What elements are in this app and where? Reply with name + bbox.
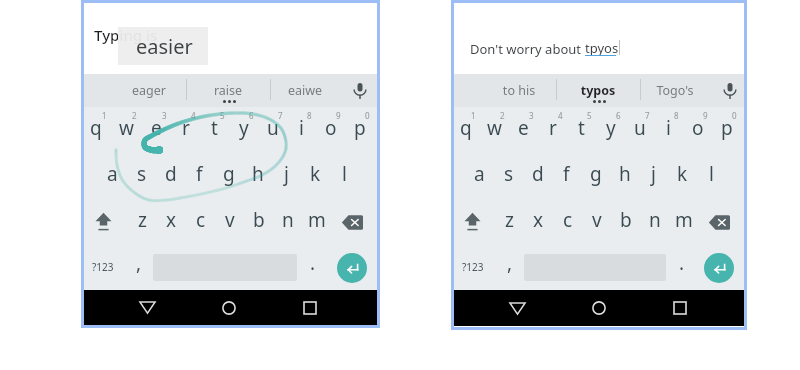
button[interactable]: 7 [258, 107, 287, 153]
staticText: y [606, 115, 616, 141]
button[interactable]: 3 [509, 107, 538, 153]
button[interactable]: l [697, 153, 726, 199]
button[interactable]: Back [129, 290, 165, 325]
button[interactable]: h [243, 153, 272, 199]
button[interactable] [186, 74, 270, 107]
staticText: Togo's [635, 82, 715, 99]
button[interactable]: Back [499, 290, 535, 326]
staticText: Don't worry about [470, 40, 585, 58]
button[interactable]: x [523, 199, 552, 245]
button[interactable]: v [214, 199, 243, 245]
staticText: Typing is [94, 25, 158, 45]
button[interactable] [270, 74, 341, 107]
button[interactable]: 4 [538, 107, 567, 153]
button[interactable]: 6 [596, 107, 625, 153]
button[interactable]: a [97, 153, 127, 199]
button[interactable]: j [272, 153, 301, 199]
button[interactable]: 0 [712, 107, 741, 153]
button[interactable]: n [639, 199, 668, 245]
staticText: , [136, 250, 142, 276]
staticText: h [252, 161, 264, 187]
button[interactable]: z [494, 199, 523, 245]
button[interactable]: j [639, 153, 668, 199]
button[interactable]: n [272, 199, 301, 245]
button[interactable]: Enter [697, 245, 741, 290]
staticText: y [239, 115, 249, 141]
button[interactable]: 3 [141, 107, 171, 153]
button[interactable]: 8 [654, 107, 683, 153]
button[interactable]: 5 [567, 107, 596, 153]
button[interactable]: . [666, 245, 697, 290]
button[interactable]: 5 [200, 107, 229, 153]
button[interactable]: Recents [662, 290, 698, 326]
button[interactable]: c [185, 199, 214, 245]
button[interactable]: 2 [111, 107, 141, 153]
button[interactable]: b [243, 199, 272, 245]
button[interactable]: Shift [81, 199, 126, 245]
button[interactable] [454, 74, 556, 107]
button[interactable]: d [156, 153, 185, 199]
staticText: j [651, 161, 656, 187]
staticText: m [675, 207, 693, 233]
button[interactable]: 8 [287, 107, 316, 153]
button[interactable]: k [668, 153, 697, 199]
staticText: to his [479, 82, 559, 99]
button[interactable]: 7 [625, 107, 654, 153]
button[interactable]: g [581, 153, 610, 199]
button[interactable]: 1 [81, 107, 111, 153]
staticText: h [619, 161, 631, 187]
button[interactable]: 0 [345, 107, 374, 153]
button[interactable]: 2 [480, 107, 509, 153]
button[interactable]: a [465, 153, 494, 199]
button[interactable]: ?123 [81, 245, 124, 290]
button[interactable]: . [297, 245, 329, 290]
staticText: eaiwe [265, 82, 345, 99]
button[interactable]: f [552, 153, 581, 199]
button[interactable]: Home [581, 290, 617, 326]
button[interactable]: g [214, 153, 243, 199]
button[interactable]: s [494, 153, 523, 199]
button[interactable]: , [124, 245, 153, 290]
staticText: 0 [365, 110, 370, 121]
button[interactable] [640, 74, 711, 107]
button[interactable]: d [523, 153, 552, 199]
button[interactable]: Shift [451, 199, 494, 245]
button[interactable]: f [185, 153, 214, 199]
staticText: e [518, 115, 529, 141]
button[interactable]: b [610, 199, 639, 245]
button[interactable]: z [126, 199, 156, 245]
button[interactable]: Home [211, 290, 247, 325]
button[interactable]: s [127, 153, 156, 199]
button[interactable]: ?123 [451, 245, 495, 290]
button[interactable]: h [610, 153, 639, 199]
staticText: 2 [132, 110, 137, 121]
button[interactable] [84, 74, 186, 107]
staticText: 1 [102, 110, 107, 121]
button[interactable]: 4 [171, 107, 200, 153]
button[interactable]: Backspace [330, 199, 374, 245]
button[interactable]: m [668, 199, 697, 245]
button[interactable]: Voice input [711, 74, 749, 107]
button[interactable]: 1 [451, 107, 480, 153]
button[interactable]: Voice input [341, 74, 379, 107]
button[interactable]: k [301, 153, 330, 199]
button[interactable]: l [330, 153, 359, 199]
button[interactable]: 9 [683, 107, 712, 153]
button[interactable]: Enter [329, 245, 374, 290]
button[interactable]: c [552, 199, 581, 245]
button[interactable]: Recents [292, 290, 328, 325]
button[interactable]: Backspace [697, 199, 741, 245]
button[interactable]: , [495, 245, 524, 290]
button[interactable]: 6 [229, 107, 258, 153]
button[interactable]: m [301, 199, 330, 245]
staticText: 7 [278, 110, 283, 121]
button[interactable]: v [581, 199, 610, 245]
staticText: 9 [336, 110, 341, 121]
button[interactable] [556, 74, 640, 107]
button[interactable]: x [156, 199, 185, 245]
staticText: s [137, 161, 147, 187]
staticText: x [533, 207, 544, 233]
button[interactable]: 9 [316, 107, 345, 153]
